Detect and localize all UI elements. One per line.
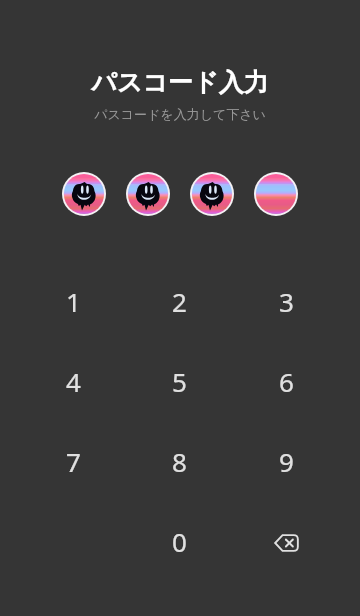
staticText: 2 xyxy=(172,284,187,319)
button[interactable]: 2 xyxy=(126,261,233,341)
button[interactable]: 0 xyxy=(126,501,233,581)
staticText: 6 xyxy=(279,364,294,399)
staticText: 3 xyxy=(279,284,294,319)
staticText: 1 xyxy=(66,284,81,319)
staticText: 0 xyxy=(172,524,187,559)
button[interactable]: 8 xyxy=(126,421,233,501)
button[interactable]: Backspace xyxy=(233,501,340,581)
button[interactable]: 3 xyxy=(233,261,340,341)
staticText: パスコードを入力して下さい xyxy=(0,106,360,122)
button[interactable]: 9 xyxy=(233,421,340,501)
staticText: 7 xyxy=(66,444,81,479)
staticText: 8 xyxy=(172,444,187,479)
staticText: パスコード入力 xyxy=(0,67,360,98)
button[interactable]: 7 xyxy=(20,421,126,501)
button[interactable]: 1 xyxy=(20,261,126,341)
button[interactable]: 5 xyxy=(126,341,233,421)
button[interactable]: 6 xyxy=(233,341,340,421)
staticText: 9 xyxy=(279,444,294,479)
button[interactable]: 4 xyxy=(20,341,126,421)
staticText: 5 xyxy=(172,364,187,399)
staticText: 4 xyxy=(66,364,81,399)
